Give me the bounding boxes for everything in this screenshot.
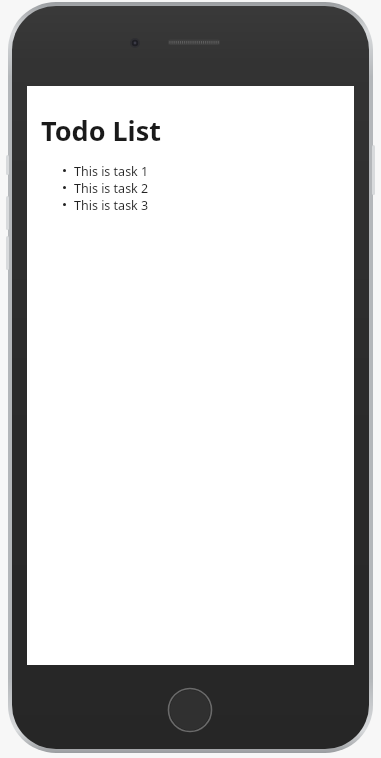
button[interactable]: This is task 3	[27, 197, 354, 214]
button[interactable]: Volume up	[6, 196, 9, 230]
button[interactable]: This is task 2	[27, 180, 354, 197]
button[interactable]: Silent switch	[6, 155, 9, 175]
staticText: This is task 2	[74, 180, 149, 197]
staticText: This is task 1	[74, 163, 149, 180]
button[interactable]: This is task 1	[27, 163, 354, 180]
staticText: Todo List	[41, 112, 161, 149]
button[interactable]: Home	[168, 688, 212, 732]
staticText: This is task 3	[74, 197, 149, 214]
button[interactable]: Volume down	[6, 236, 9, 270]
